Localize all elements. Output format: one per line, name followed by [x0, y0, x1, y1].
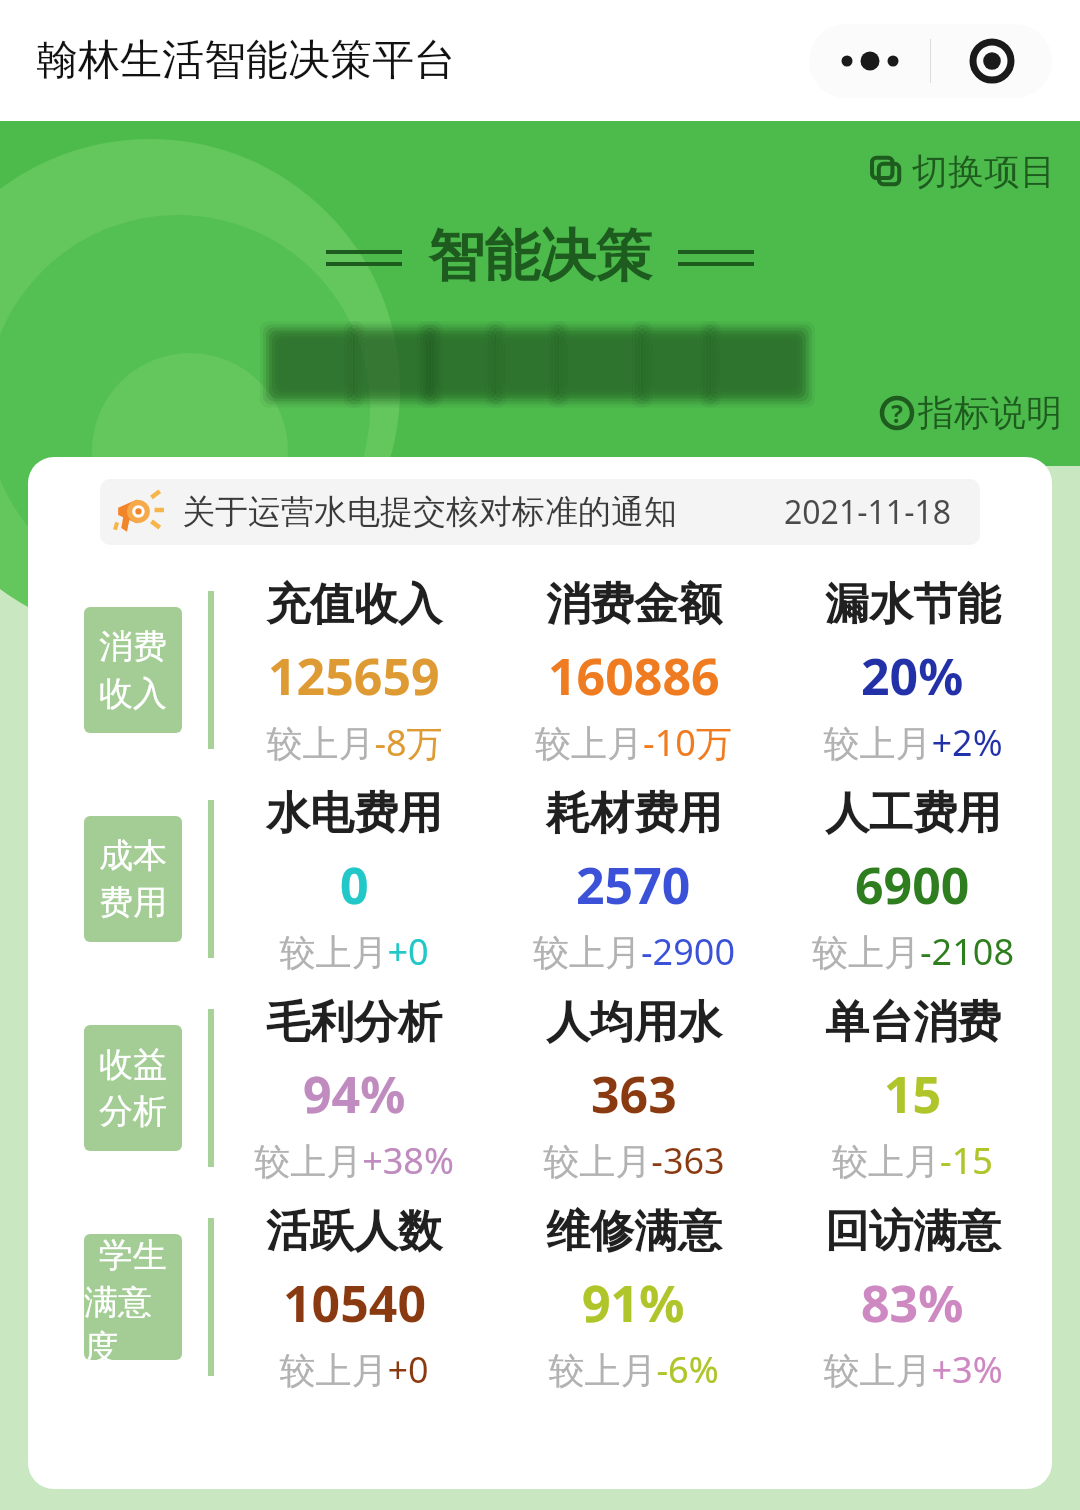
staticText: 消费	[99, 625, 167, 668]
button[interactable]: 回访满意	[773, 1204, 1052, 1389]
staticText: 2570	[576, 851, 691, 919]
staticText: 10540	[283, 1269, 426, 1337]
staticText: 较上月-8万	[266, 718, 443, 762]
staticText: 人工费用	[825, 786, 1001, 841]
staticText: 毛利分析	[266, 995, 442, 1050]
button[interactable]: 维修满意	[494, 1204, 773, 1389]
staticText: 切换项目	[912, 149, 1056, 194]
button[interactable]: 单台消费	[773, 995, 1052, 1180]
staticText: 较上月-2108	[812, 927, 1014, 971]
staticText: 较上月-10万	[535, 718, 732, 762]
staticText: 智能决策	[428, 221, 652, 292]
staticText: 91%	[582, 1269, 685, 1337]
button[interactable]: 人均用水	[494, 995, 773, 1180]
staticText: 160886	[548, 642, 720, 710]
staticText: 分析	[99, 1090, 167, 1133]
staticText: 指标说明	[918, 390, 1062, 435]
staticText: 耗材费用	[546, 786, 722, 841]
staticText: 单台消费	[825, 995, 1001, 1050]
staticText: 较上月+0	[279, 1345, 429, 1389]
button[interactable]: 充值收入	[214, 577, 494, 762]
staticText: 83%	[861, 1269, 964, 1337]
staticText: 漏水节能	[825, 577, 1001, 632]
staticText: 20%	[861, 642, 964, 710]
staticText: 回访满意	[825, 1204, 1001, 1259]
staticText: 收益	[99, 1043, 167, 1086]
button[interactable]: More options	[809, 24, 930, 98]
button[interactable]: ?	[876, 386, 1066, 439]
staticText: 水电费用	[266, 786, 442, 841]
button[interactable]: 收益	[84, 1025, 182, 1151]
staticText: 翰林生活智能决策平台	[36, 34, 456, 87]
staticText: 较上月-2900	[533, 927, 735, 971]
button[interactable]: 活跃人数	[214, 1204, 494, 1389]
button[interactable]: 关于运营水电提交核对标准的通知	[100, 479, 980, 545]
staticText: 较上月-15	[832, 1136, 993, 1180]
staticText: 收入	[99, 672, 167, 715]
staticText: 较上月+2%	[823, 718, 1003, 762]
staticText: ?	[891, 396, 903, 430]
staticText: 较上月+38%	[254, 1136, 454, 1180]
staticText: 活跃人数	[266, 1204, 442, 1259]
button[interactable]: 消费	[84, 607, 182, 733]
staticText: 维修满意	[546, 1204, 722, 1259]
button[interactable]: 毛利分析	[214, 995, 494, 1180]
staticText: 363	[591, 1060, 677, 1128]
button[interactable]: 耗材费用	[494, 786, 773, 971]
staticText: 满意度	[84, 1281, 182, 1360]
staticText: 充值收入	[266, 577, 442, 632]
staticText: 较上月-363	[543, 1136, 725, 1180]
staticText: 消费金额	[546, 577, 722, 632]
button[interactable]: Close mini program	[931, 24, 1052, 98]
button[interactable]: 学生	[84, 1234, 182, 1360]
staticText: 15	[884, 1060, 942, 1128]
staticText: 成本	[99, 834, 167, 877]
staticText: 6900	[855, 851, 970, 919]
button[interactable]: 消费金额	[494, 577, 773, 762]
staticText: 2021-11-18	[784, 490, 952, 534]
staticText: 人均用水	[546, 995, 722, 1050]
staticText: 0	[340, 851, 369, 919]
button[interactable]: 成本	[84, 816, 182, 942]
staticText: 费用	[99, 881, 167, 924]
staticText: 学生	[99, 1234, 167, 1277]
button[interactable]: 水电费用	[214, 786, 494, 971]
staticText: 较上月-6%	[548, 1345, 719, 1389]
staticText: 较上月+3%	[823, 1345, 1003, 1389]
button[interactable]: 漏水节能	[773, 577, 1052, 762]
staticText: 94%	[303, 1060, 406, 1128]
button[interactable]: 切换项目	[866, 145, 1060, 198]
staticText: 较上月+0	[279, 927, 429, 971]
staticText: 关于运营水电提交核对标准的通知	[182, 491, 677, 533]
staticText: 125659	[268, 642, 440, 710]
button[interactable]: 人工费用	[773, 786, 1052, 971]
